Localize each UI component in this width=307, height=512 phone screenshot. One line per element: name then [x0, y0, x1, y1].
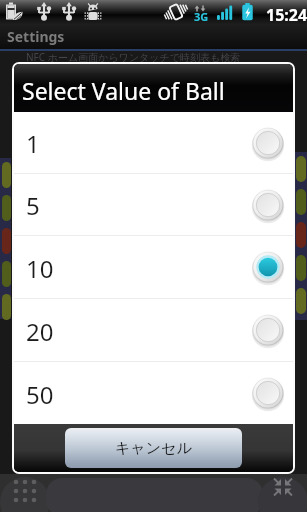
button[interactable]: 5	[14, 174, 293, 235]
staticText: NFC ホーム画面からワンタッチで時刻表も検索	[26, 50, 241, 64]
staticText: 5	[26, 189, 271, 222]
staticText: 20	[26, 315, 271, 348]
staticText: 10	[26, 252, 271, 285]
button[interactable]: 10	[14, 236, 293, 298]
button[interactable]: All apps	[0, 474, 307, 512]
staticText: Select Value of Ball	[22, 75, 225, 106]
staticText: 1	[26, 127, 271, 160]
button[interactable]: 1	[14, 112, 293, 173]
button[interactable]: キャンセル	[65, 428, 242, 468]
staticText: 電をすぐ検索！	[96, 66, 167, 79]
staticText: 15:24	[266, 4, 307, 26]
button[interactable]: 20	[14, 299, 293, 361]
button[interactable]: Minimize dock	[247, 474, 307, 512]
staticText: 3G	[194, 9, 209, 24]
staticText: Settings	[7, 27, 65, 46]
button[interactable]: 50	[14, 362, 293, 424]
staticText: 50	[26, 378, 271, 411]
staticText: キャンセル	[115, 439, 192, 458]
